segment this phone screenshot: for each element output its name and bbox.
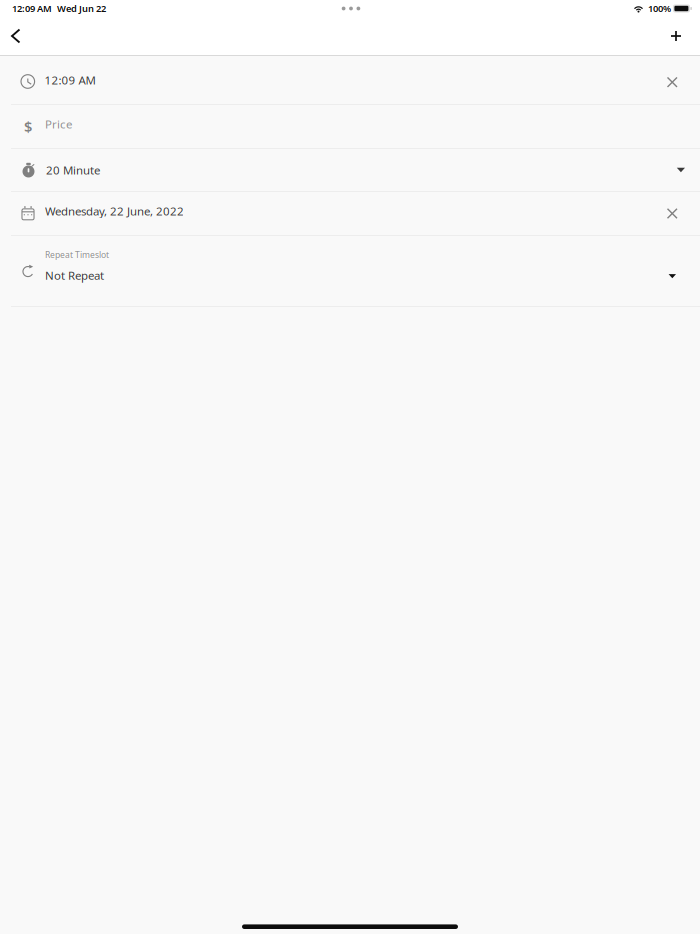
button[interactable]: Repeat Timeslot bbox=[0, 236, 700, 306]
button[interactable]: Wednesday, 22 June, 2022 bbox=[0, 192, 700, 235]
button[interactable]: Back bbox=[0, 17, 31, 54]
button[interactable]: Add bbox=[658, 18, 700, 54]
staticText: 12:09 AM bbox=[45, 72, 96, 88]
staticText: $ bbox=[24, 117, 32, 136]
staticText: 12:09 AM bbox=[12, 2, 52, 15]
staticText: Wed Jun 22 bbox=[57, 2, 106, 15]
button[interactable]: 12:09 AM bbox=[0, 56, 700, 104]
staticText: Not Repeat bbox=[45, 267, 104, 283]
staticText: 20 Minute bbox=[46, 162, 100, 178]
staticText: 100% bbox=[648, 2, 671, 15]
button[interactable]: 20 Minute bbox=[0, 149, 700, 191]
staticText: Price bbox=[45, 116, 72, 132]
staticText: Wednesday, 22 June, 2022 bbox=[45, 203, 184, 219]
staticText: Repeat Timeslot bbox=[45, 249, 109, 260]
button[interactable]: $ bbox=[0, 105, 700, 148]
